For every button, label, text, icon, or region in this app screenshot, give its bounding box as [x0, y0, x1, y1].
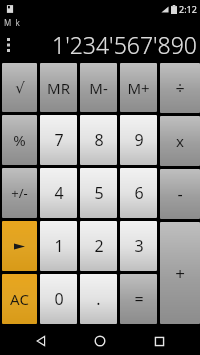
staticText: MR	[47, 78, 70, 98]
button[interactable]: 7	[40, 115, 77, 165]
staticText: 2	[94, 235, 104, 257]
staticText: -	[177, 183, 183, 205]
staticText: AC	[10, 289, 29, 309]
button[interactable]: 8	[80, 115, 117, 165]
staticText: 2:12	[179, 3, 197, 15]
button[interactable]: 6	[120, 168, 157, 218]
button[interactable]: ÷	[160, 63, 200, 113]
button[interactable]: More options	[0, 27, 16, 62]
staticText: M k	[4, 17, 20, 27]
staticText: .	[96, 288, 101, 310]
button[interactable]: x	[160, 116, 200, 166]
button[interactable]: Backspace	[2, 221, 37, 271]
button[interactable]: 9	[120, 115, 157, 165]
staticText: 1	[54, 235, 64, 257]
staticText: 6	[134, 182, 144, 204]
button[interactable]: +	[160, 222, 200, 324]
button[interactable]: M-	[80, 63, 117, 112]
button[interactable]: 4	[40, 168, 77, 218]
staticText: 0	[54, 288, 64, 310]
staticText: 8	[94, 129, 104, 151]
button[interactable]: M+	[120, 63, 157, 112]
button[interactable]: .	[80, 274, 117, 324]
button[interactable]: Recent apps	[141, 327, 177, 355]
button[interactable]: %	[2, 115, 37, 165]
staticText: ÷	[175, 77, 185, 99]
staticText: 1'234'567'890	[52, 29, 197, 60]
staticText: 7	[54, 129, 64, 151]
button[interactable]: +/-	[2, 168, 37, 218]
staticText: 9	[134, 129, 144, 151]
button[interactable]: √	[2, 63, 37, 112]
button[interactable]: 0	[40, 274, 77, 324]
button[interactable]: 1	[40, 221, 77, 271]
button[interactable]: Back	[23, 327, 59, 355]
button[interactable]: =	[120, 274, 157, 324]
staticText: 3	[134, 235, 144, 257]
button[interactable]: -	[160, 169, 200, 219]
staticText: x	[176, 131, 184, 151]
staticText: %	[13, 130, 26, 150]
button[interactable]: AC	[2, 274, 37, 324]
button[interactable]: Home	[82, 327, 118, 355]
staticText: √	[15, 79, 25, 96]
button[interactable]: 3	[120, 221, 157, 271]
button[interactable]: 5	[80, 168, 117, 218]
staticText: +/-	[11, 184, 28, 202]
staticText: +	[175, 262, 185, 285]
button[interactable]: MR	[40, 63, 77, 112]
button[interactable]: 2	[80, 221, 117, 271]
staticText: 4	[54, 182, 64, 204]
staticText: =	[134, 288, 144, 310]
staticText: 5	[94, 182, 104, 204]
staticText: M-	[89, 78, 108, 98]
staticText: M+	[127, 78, 150, 98]
